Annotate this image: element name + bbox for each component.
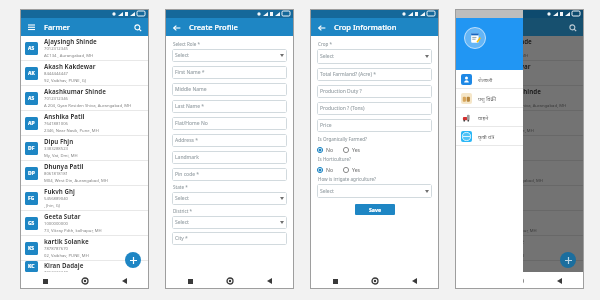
button[interactable]: Price	[317, 119, 432, 132]
button[interactable]: Pin code *	[172, 168, 287, 181]
button[interactable]: AK	[455, 61, 584, 86]
staticText: DF	[28, 145, 35, 152]
staticText: Dhunya Patil	[44, 162, 84, 170]
staticText: District *	[173, 208, 193, 214]
button[interactable]: KC	[20, 261, 149, 272]
button[interactable]: Search	[132, 22, 143, 33]
button[interactable]: Middle Name	[172, 83, 287, 96]
staticText: AS	[463, 45, 470, 52]
button[interactable]: Yes	[343, 166, 361, 173]
button[interactable]: Select	[172, 216, 287, 229]
button[interactable]: GS	[20, 211, 149, 236]
staticText: My, Vat, Dmi, MH	[44, 153, 78, 159]
staticText: Kiran Dadaje	[44, 261, 84, 269]
staticText: Akash Kakdewar	[479, 62, 531, 70]
button[interactable]: Address *	[172, 134, 287, 147]
button[interactable]: KC	[455, 261, 584, 272]
button[interactable]: AK	[20, 61, 149, 86]
button[interactable]: Last Name *	[172, 100, 287, 113]
button[interactable]: Total Farmland? (Acre) *	[317, 68, 432, 81]
button[interactable]: Open navigation menu	[26, 22, 37, 33]
button[interactable]: Save	[355, 204, 395, 215]
staticText: Landmark	[175, 154, 199, 161]
staticText: 5456889040	[44, 196, 68, 202]
button[interactable]: No	[317, 166, 334, 173]
button[interactable]: FG	[20, 186, 149, 211]
button[interactable]: DP	[20, 161, 149, 186]
button[interactable]: Back	[316, 22, 327, 33]
button[interactable]: DF	[20, 136, 149, 161]
staticText: Select Role *	[173, 41, 201, 47]
button[interactable]: Landmark	[172, 151, 287, 164]
button[interactable]: Recent apps	[328, 274, 342, 288]
staticText: FG	[28, 195, 35, 202]
button[interactable]: कृषी यंत्र	[455, 127, 523, 146]
button[interactable]: First Name *	[172, 66, 287, 79]
staticText: AC134 , Aurangabad, MH	[479, 53, 529, 59]
button[interactable]: Select	[317, 49, 432, 64]
button[interactable]: Production ? (Tons)	[317, 102, 432, 115]
button[interactable]: AS	[20, 36, 149, 61]
button[interactable]: GS	[455, 211, 584, 236]
staticText: 7878787670	[44, 246, 68, 252]
staticText: Address *	[175, 137, 198, 144]
button[interactable]: DF	[455, 136, 584, 161]
button[interactable]: Select	[317, 184, 432, 198]
button[interactable]: FG	[455, 186, 584, 211]
staticText: Flat/Home No	[175, 120, 208, 127]
button[interactable]: Home	[223, 274, 237, 288]
button[interactable]: Select	[172, 192, 287, 205]
button[interactable]: शेतकरी	[455, 70, 523, 89]
button[interactable]: City *	[172, 232, 287, 245]
button[interactable]: Add farmer	[560, 252, 576, 268]
button[interactable]: Yes	[343, 146, 361, 153]
button[interactable]: Back	[262, 274, 276, 288]
button[interactable]: AS	[455, 36, 584, 61]
button[interactable]: Recent apps	[183, 274, 197, 288]
staticText: AP	[463, 120, 470, 127]
button[interactable]: Flat/Home No	[172, 117, 287, 130]
staticText: State *	[173, 184, 188, 190]
button[interactable]: Recent apps	[38, 274, 52, 288]
button[interactable]: Home	[513, 274, 527, 288]
button[interactable]: KS	[455, 236, 584, 261]
staticText: kartik Solanke	[44, 237, 89, 245]
button[interactable]: No	[317, 146, 334, 153]
button[interactable]: AS	[20, 86, 149, 111]
button[interactable]: KS	[20, 236, 149, 261]
staticText: kartik Solanke	[479, 237, 524, 245]
staticText: 73, Vikray Pdth, kolhapur, MH	[479, 228, 537, 234]
button[interactable]: पशु विक्री	[455, 89, 523, 108]
button[interactable]: Search	[567, 22, 578, 33]
button[interactable]: Select	[172, 49, 287, 62]
staticText: Save	[369, 206, 382, 213]
staticText: M04, West Din, Aurangabad, MH	[44, 178, 108, 184]
button[interactable]: Back	[407, 274, 421, 288]
button[interactable]: DP	[455, 161, 584, 186]
button[interactable]: वाहने	[455, 108, 523, 127]
staticText: Farmer	[44, 22, 71, 32]
button[interactable]: Add farmer	[125, 252, 141, 268]
button[interactable]: Production Duty ?	[317, 85, 432, 98]
staticText: Yes	[352, 166, 361, 173]
button[interactable]: Home	[78, 274, 92, 288]
staticText: Production Duty ?	[320, 88, 362, 95]
button[interactable]: AP	[455, 111, 584, 136]
staticText: 1000000000	[44, 221, 68, 227]
staticText: DP	[28, 170, 35, 177]
button[interactable]: Back	[552, 274, 566, 288]
button[interactable]: Home	[368, 274, 382, 288]
button[interactable]: Back	[171, 22, 182, 33]
button[interactable]: Back	[117, 274, 131, 288]
button[interactable]: AS	[455, 86, 584, 111]
staticText: 92, Vaibhav, PUNE, GJ	[479, 78, 522, 84]
button[interactable]: AP	[20, 111, 149, 136]
